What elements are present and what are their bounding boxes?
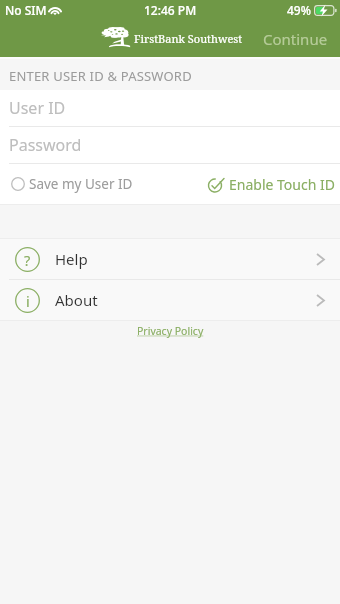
button[interactable]: Continue: [251, 21, 340, 57]
staticText: About: [55, 290, 98, 310]
staticText: 12:46 PM: [144, 2, 197, 18]
button[interactable]: Password: [0, 127, 340, 163]
staticText: ?: [24, 250, 31, 270]
staticText: No SIM: [5, 2, 47, 18]
staticText: Help: [55, 249, 88, 269]
staticText: User ID: [9, 97, 66, 119]
staticText: Password: [9, 134, 82, 156]
button[interactable]: ?: [0, 239, 340, 279]
staticText: i: [26, 291, 30, 311]
button[interactable]: Privacy Policy: [133, 321, 208, 342]
staticText: ENTER USER ID & PASSWORD: [9, 67, 192, 85]
staticText: Enable Touch ID: [229, 175, 335, 194]
staticText: FirstBank Southwest: [134, 31, 243, 46]
button[interactable]: Save my User ID: [0, 175, 141, 193]
button[interactable]: i: [0, 280, 340, 320]
button[interactable]: Enable Touch ID: [208, 175, 340, 194]
staticText: 49%: [287, 2, 311, 18]
button[interactable]: User ID: [0, 90, 340, 126]
staticText: Save my User ID: [29, 175, 133, 193]
